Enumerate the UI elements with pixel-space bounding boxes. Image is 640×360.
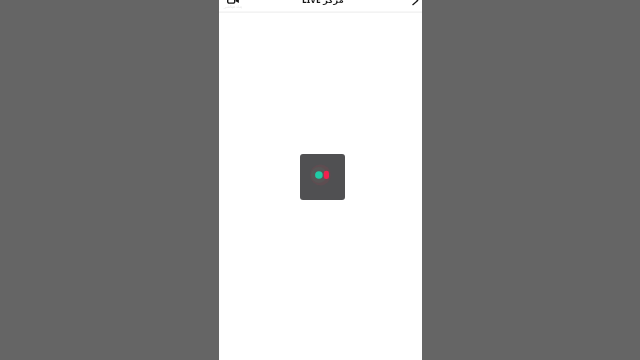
staticText: LIVE مركز (302, 0, 344, 5)
staticText: بث مباشر (224, 3, 243, 9)
button[interactable]: Go live (221, 0, 245, 3)
button[interactable]: Back (407, 0, 422, 6)
